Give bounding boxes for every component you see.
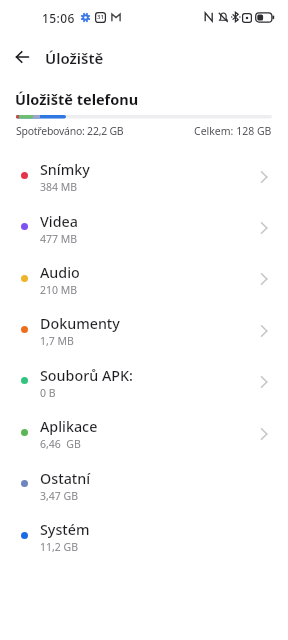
staticText: Souborů APK: [40,366,133,385]
staticText: Audio [40,263,80,282]
staticText: Ostatní [40,469,91,488]
staticText: 1,7 MB [40,334,74,348]
staticText: 15:06 [42,10,75,26]
staticText: Úložiště [45,48,104,68]
staticText: 210 MB [40,283,78,297]
staticText: Celkem: 128 GB [194,124,272,138]
staticText: 384 MB [40,180,78,194]
staticText: 477 MB [40,232,78,246]
staticText: 3,47 GB [40,489,79,503]
staticText: 31 [97,13,104,21]
staticText: Dokumenty [40,314,120,333]
staticText: Videa [40,212,78,231]
staticText: Aplikace [40,417,98,436]
staticText: Úložiště telefonu [15,89,139,109]
staticText: 6,46 GB [40,437,81,451]
staticText: 11,2 GB [40,540,79,554]
staticText: 0 B [40,386,56,400]
staticText: Spotřebováno: 22,2 GB [16,124,124,138]
staticText: Systém [40,520,90,539]
staticText: Snímky [40,160,90,179]
